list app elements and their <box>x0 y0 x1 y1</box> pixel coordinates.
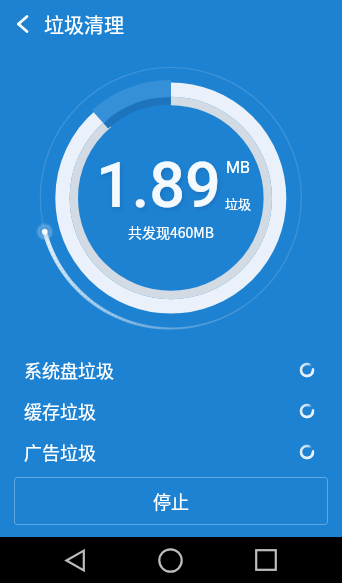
staticText: 缓存垃圾 <box>24 398 96 424</box>
button[interactable]: 缓存垃圾 <box>0 390 342 431</box>
staticText: 系统盘垃圾 <box>24 357 114 383</box>
staticText: 广告垃圾 <box>24 439 96 465</box>
button[interactable]: Home <box>142 537 199 583</box>
staticText: 停止 <box>153 488 189 514</box>
staticText: 共发现460MB <box>128 222 214 242</box>
button[interactable]: Back <box>47 537 103 583</box>
staticText: 垃圾 <box>225 194 252 213</box>
button[interactable]: 广告垃圾 <box>0 431 342 472</box>
button[interactable]: Recent apps <box>238 537 294 583</box>
button[interactable]: 停止 <box>14 477 328 525</box>
staticText: 垃圾清理 <box>44 10 124 39</box>
button[interactable]: 系统盘垃圾 <box>0 349 342 390</box>
button[interactable]: Back <box>0 0 44 48</box>
staticText: 1.89 <box>96 149 221 223</box>
staticText: MB <box>226 158 250 177</box>
